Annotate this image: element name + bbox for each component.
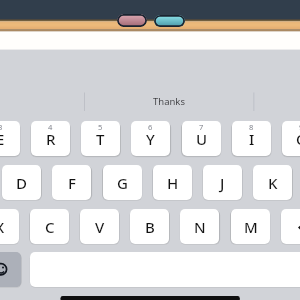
button[interactable]: D [2, 165, 41, 200]
button[interactable]: Thanks [84, 92, 254, 111]
staticText: 5 [98, 122, 103, 132]
button[interactable]: G [103, 165, 142, 200]
staticText: O [296, 129, 300, 149]
staticText: X [0, 217, 5, 237]
button[interactable]: M [231, 209, 270, 244]
button[interactable]: X [0, 209, 19, 244]
button[interactable]: 3 [0, 121, 20, 156]
button[interactable]: 8 [232, 121, 271, 156]
staticText: M [244, 217, 258, 237]
staticText: H [167, 173, 179, 193]
button[interactable]: C [30, 209, 69, 244]
button[interactable]: B [130, 209, 169, 244]
button[interactable]: 9 [282, 121, 300, 156]
staticText: 3 [0, 122, 3, 132]
button[interactable]: Backspace [281, 209, 300, 244]
button[interactable]: 6 [131, 121, 170, 156]
button[interactable]: 4 [31, 121, 70, 156]
staticText: B [145, 217, 155, 237]
staticText: Thanks [153, 95, 185, 108]
staticText: N [194, 217, 206, 237]
staticText: 8 [249, 122, 254, 132]
staticText: V [95, 217, 105, 237]
staticText: E [0, 129, 5, 149]
staticText: 6 [148, 122, 153, 132]
button[interactable]: V [80, 209, 119, 244]
staticText: Y [146, 129, 155, 149]
button[interactable]: K [253, 165, 292, 200]
button[interactable]: N [180, 209, 219, 244]
staticText: G [117, 173, 128, 193]
staticText: U [196, 129, 208, 149]
button[interactable]: 5 [81, 121, 120, 156]
button[interactable]: H [153, 165, 192, 200]
staticText: J [220, 173, 225, 193]
staticText: T [96, 129, 105, 149]
button[interactable]: J [203, 165, 242, 200]
button[interactable]: Chat message [154, 15, 185, 27]
staticText: R [46, 129, 56, 149]
button[interactable]: F [52, 165, 91, 200]
staticText: D [16, 173, 27, 193]
staticText: K [268, 173, 278, 193]
staticText: F [68, 173, 76, 193]
staticText: 9 [299, 122, 300, 132]
button[interactable]: Chat message [117, 14, 147, 27]
staticText: 4 [48, 122, 53, 132]
button[interactable]: 7 [182, 121, 221, 156]
button[interactable]: Emoji keyboard [0, 252, 21, 287]
staticText: C [45, 217, 55, 237]
staticText: 7 [199, 122, 204, 132]
staticText: I [249, 129, 255, 149]
